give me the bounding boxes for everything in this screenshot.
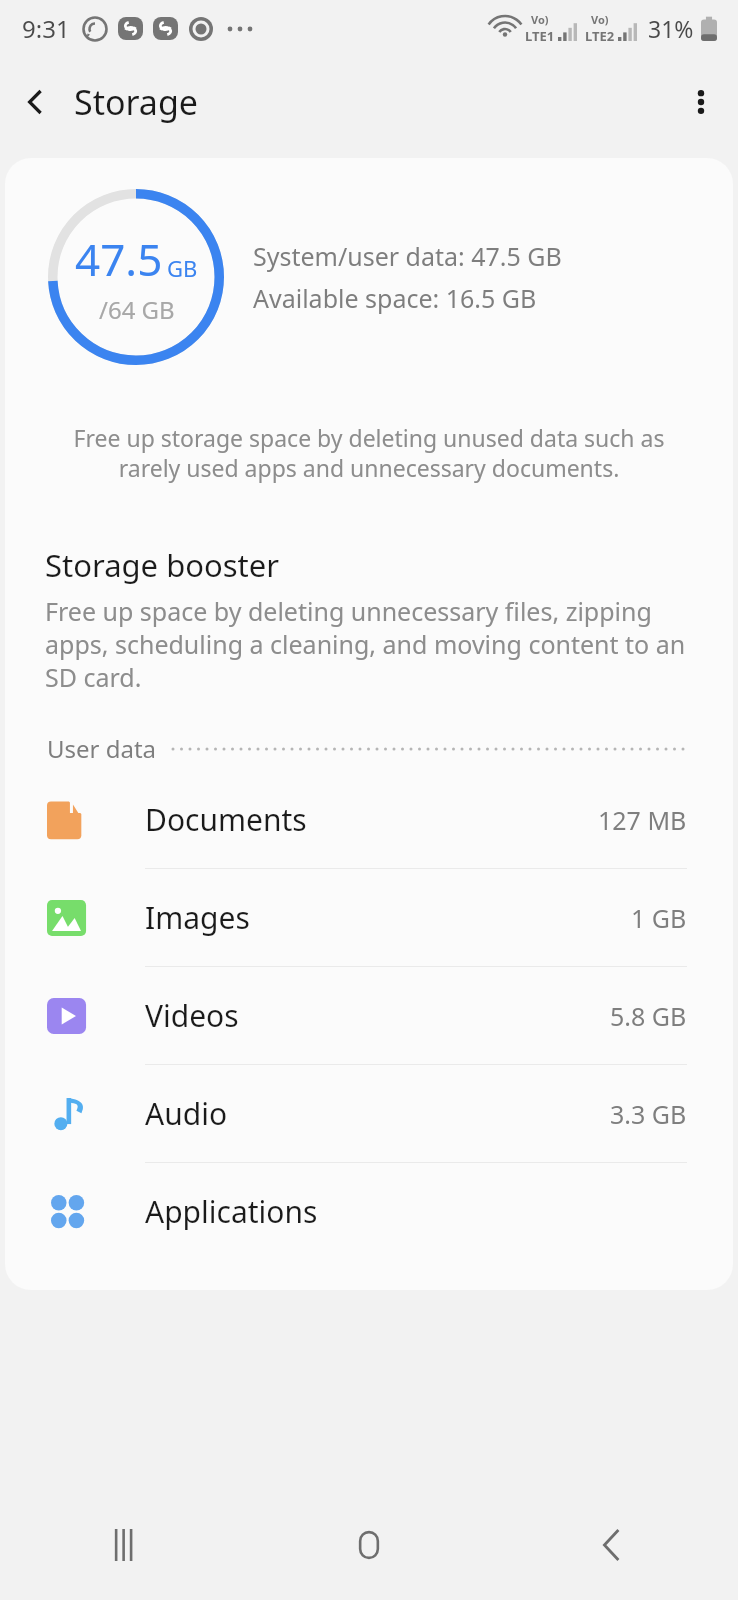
staticText: Storage [74, 79, 199, 125]
button[interactable]: Home [246, 1490, 492, 1600]
button[interactable]: Recents [0, 1490, 246, 1600]
staticText: 47.5 [75, 229, 163, 289]
button[interactable]: Back [492, 1490, 738, 1600]
staticText: Applications [145, 1191, 318, 1232]
staticText: LTE2 [585, 27, 615, 45]
staticText: Storage booster [45, 544, 280, 586]
staticText: Free up space by deleting unnecessary fi… [45, 594, 693, 694]
button[interactable]: Videos [5, 967, 733, 1064]
staticText: Audio [145, 1093, 228, 1134]
button[interactable]: Images [5, 869, 733, 966]
staticText: Images [145, 897, 250, 938]
staticText: Documents [145, 799, 307, 840]
staticText: LTE1 [525, 27, 555, 45]
staticText: GB [167, 253, 198, 283]
staticText: /64 GB [99, 293, 175, 326]
staticText: Videos [145, 995, 239, 1036]
staticText: 1 GB [631, 901, 687, 935]
button[interactable]: Applications [5, 1163, 733, 1260]
staticText: System/user data: 47.5 GB [253, 239, 562, 273]
staticText: Free up storage space by deleting unused… [47, 422, 691, 484]
staticText: 3.3 GB [610, 1097, 687, 1131]
button[interactable]: Storage booster [5, 540, 733, 698]
staticText: User data [47, 732, 157, 765]
staticText: Available space: 16.5 GB [253, 281, 537, 315]
button[interactable]: Audio [5, 1065, 733, 1162]
staticText: Vo) [531, 12, 549, 27]
staticText: 9:31 [22, 12, 70, 45]
staticText: Vo) [591, 12, 609, 27]
button[interactable]: Back [0, 65, 74, 139]
staticText: 5.8 GB [610, 999, 687, 1033]
staticText: 31% [648, 13, 694, 44]
button[interactable]: Documents [5, 771, 733, 868]
button[interactable]: More options [664, 65, 738, 139]
staticText: 127 MB [598, 803, 687, 837]
